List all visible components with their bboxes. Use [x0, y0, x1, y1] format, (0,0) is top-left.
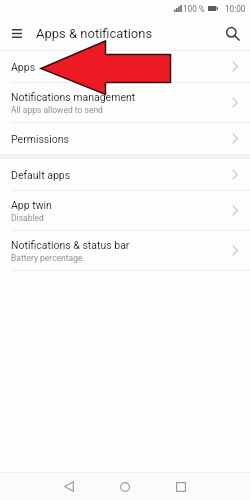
staticText: Notifications management [11, 91, 136, 103]
staticText: App twin [11, 199, 52, 211]
staticText: Apps [11, 61, 36, 73]
button[interactable]: Back [52, 473, 86, 500]
staticText: Apps & notifications [36, 26, 153, 41]
button[interactable]: Search [217, 17, 247, 50]
button[interactable]: Default apps [0, 159, 250, 190]
staticText: 10:00 [225, 4, 246, 14]
staticText: Disabled [11, 213, 44, 223]
staticText: 100 % [183, 4, 205, 14]
button[interactable]: Home [108, 473, 142, 500]
staticText: Permissions [11, 133, 70, 145]
staticText: Notifications & status bar [11, 239, 130, 251]
button[interactable]: Notifications & status bar [0, 231, 250, 270]
button[interactable]: Recents [164, 473, 198, 500]
button[interactable]: Permissions [0, 123, 250, 154]
button[interactable]: Notifications management [0, 83, 250, 122]
staticText: All apps allowed to send [11, 105, 103, 115]
button[interactable]: App twin [0, 191, 250, 230]
staticText: Default apps [11, 169, 71, 181]
button[interactable]: Menu [0, 17, 33, 50]
staticText: Battery percentage [11, 253, 83, 263]
button[interactable]: Apps [0, 51, 250, 82]
